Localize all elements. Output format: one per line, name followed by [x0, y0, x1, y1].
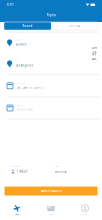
staticText: London: [16, 43, 27, 46]
staticText: To: [16, 60, 18, 62]
staticText: From: [16, 39, 20, 41]
staticText: One Way: [69, 24, 80, 28]
staticText: Hotels: [49, 214, 53, 215]
button[interactable]: Class: [55, 166, 102, 173]
staticText: Economy: [55, 170, 66, 173]
staticText: Return date: [16, 108, 33, 111]
staticText: Passengers: [11, 165, 21, 167]
button[interactable]: To: [0, 53, 102, 74]
button[interactable]: SEARCH FLIGHTS: [4, 186, 97, 195]
button[interactable]: Profile: [68, 200, 102, 220]
staticText: 1 Adult: [17, 170, 28, 173]
button[interactable]: Departure: [0, 75, 102, 97]
staticText: Flights: [46, 13, 55, 17]
button[interactable]: Round: [4, 22, 51, 30]
button[interactable]: Return: [0, 97, 102, 119]
staticText: Flights: [15, 214, 19, 215]
button[interactable]: One Way: [51, 22, 98, 30]
staticText: LAX: [92, 57, 97, 61]
staticText: Round: [22, 24, 32, 28]
button[interactable]: Hotels: [34, 200, 68, 220]
button[interactable]: From: [0, 32, 102, 53]
staticText: Los Angeles: [16, 64, 33, 67]
button[interactable]: Passengers: [11, 165, 55, 173]
staticText: Departure: [16, 82, 24, 84]
staticText: Do., Jan 19, 2019: [16, 86, 42, 89]
staticText: Profile: [82, 214, 87, 215]
staticText: Class: [55, 166, 59, 167]
button[interactable]: Flights: [0, 200, 34, 220]
button[interactable]: Swap airports: [92, 51, 97, 56]
staticText: 8:01: [7, 3, 14, 6]
staticText: LON: [92, 46, 97, 49]
staticText: Return: [16, 104, 21, 106]
staticText: SEARCH FLIGHTS: [40, 189, 61, 193]
